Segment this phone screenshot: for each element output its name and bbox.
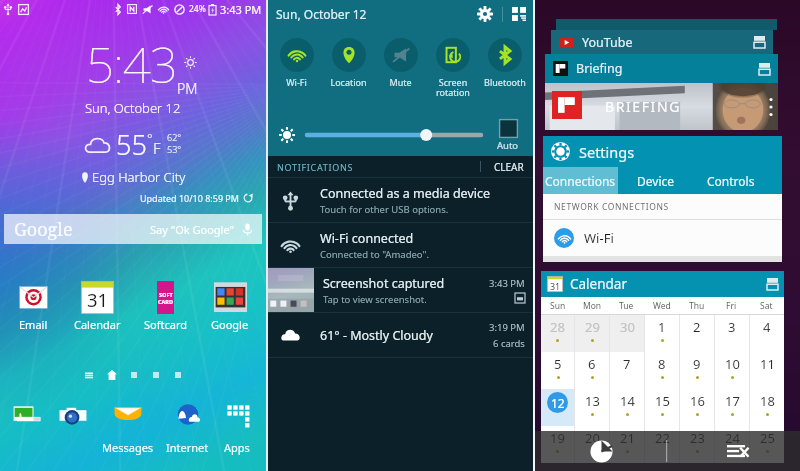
button[interactable]: Settings bbox=[543, 136, 782, 167]
button[interactable]: 9 bbox=[680, 352, 714, 389]
staticText: ° bbox=[147, 129, 153, 147]
button[interactable]: 21 bbox=[610, 426, 644, 463]
button[interactable]: Edit quick settings bbox=[512, 7, 526, 21]
button[interactable]: 5 bbox=[541, 352, 574, 389]
button[interactable]: 22 bbox=[645, 426, 679, 463]
staticText: 19 bbox=[550, 429, 565, 447]
button[interactable] bbox=[307, 126, 481, 144]
button[interactable]: 2 bbox=[680, 315, 714, 352]
button[interactable]: Google bbox=[205, 281, 255, 332]
button[interactable]: 31 bbox=[541, 271, 784, 297]
button[interactable]: Location bbox=[323, 38, 374, 88]
button[interactable]: Mute bbox=[375, 38, 426, 88]
staticText: PM bbox=[177, 79, 198, 98]
button[interactable]: 17 bbox=[715, 389, 749, 426]
staticText: Google bbox=[211, 317, 249, 332]
staticText: 14 bbox=[620, 392, 635, 410]
button[interactable]: SOFT bbox=[138, 281, 193, 332]
button[interactable]: 1 bbox=[645, 315, 679, 352]
button[interactable]: Wi-Fi bbox=[543, 220, 782, 256]
button[interactable]: Google bbox=[4, 214, 262, 244]
button[interactable] bbox=[85, 371, 93, 379]
button[interactable]: 24 bbox=[715, 426, 749, 463]
button[interactable]: Wi-Fi connected bbox=[268, 223, 533, 267]
staticText: 31 bbox=[87, 287, 109, 312]
button[interactable]: 13 bbox=[575, 389, 609, 426]
staticText: Device bbox=[637, 173, 675, 189]
button[interactable]: Messages bbox=[99, 403, 157, 455]
button[interactable]: Controls bbox=[693, 167, 768, 194]
staticText: 1 bbox=[658, 318, 666, 336]
staticText: Sun, October 12 bbox=[85, 99, 181, 117]
button[interactable]: 23 bbox=[680, 426, 714, 463]
button[interactable] bbox=[499, 119, 518, 138]
button[interactable] bbox=[10, 403, 48, 440]
staticText: 53° bbox=[167, 143, 182, 155]
staticText: 11 bbox=[760, 355, 775, 373]
other: More options bbox=[769, 96, 773, 118]
button[interactable]: YouTube bbox=[551, 30, 773, 54]
staticText: 9 bbox=[693, 355, 701, 373]
button[interactable]: Briefing bbox=[545, 54, 778, 83]
button[interactable]: Connections bbox=[543, 167, 618, 194]
button[interactable]: 4 bbox=[750, 315, 784, 352]
button[interactable]: CLEAR bbox=[494, 160, 524, 174]
button[interactable]: 14 bbox=[610, 389, 644, 426]
staticText: NETWORK CONNECTIONS bbox=[554, 201, 669, 213]
button[interactable]: 20 bbox=[575, 426, 609, 463]
button[interactable]: Recent apps bbox=[584, 434, 618, 468]
button[interactable]: 15 bbox=[645, 389, 679, 426]
button[interactable]: 25 bbox=[750, 426, 784, 463]
button[interactable]: Device bbox=[618, 167, 693, 194]
staticText: Auto bbox=[497, 139, 519, 152]
button[interactable]: Screenshot captured bbox=[268, 268, 533, 312]
staticText: 6 cards bbox=[493, 337, 525, 350]
staticText: Fri bbox=[726, 300, 737, 312]
button[interactable] bbox=[54, 403, 92, 440]
button[interactable]: Home bbox=[650, 434, 684, 468]
button[interactable]: 6 bbox=[575, 352, 609, 389]
button[interactable]: 30 bbox=[610, 315, 644, 352]
staticText: Softcard bbox=[144, 317, 187, 332]
button[interactable]: Connected as a media device bbox=[268, 178, 533, 222]
button[interactable]: Back bbox=[721, 434, 755, 468]
staticText: Bluetooth bbox=[484, 76, 526, 88]
button[interactable] bbox=[107, 370, 117, 380]
button[interactable]: Screen rotation bbox=[427, 38, 478, 98]
button[interactable]: 3 bbox=[715, 315, 749, 352]
staticText: 12 bbox=[551, 395, 565, 411]
button[interactable]: 19 bbox=[541, 426, 574, 463]
button[interactable]: 31 bbox=[68, 281, 127, 332]
staticText: 24% bbox=[189, 3, 206, 15]
button[interactable]: 28 bbox=[541, 315, 574, 352]
button[interactable]: 7 bbox=[610, 352, 644, 389]
button[interactable]: Apps bbox=[218, 403, 256, 455]
staticText: 22 bbox=[655, 429, 670, 447]
button[interactable]: Wi-Fi bbox=[271, 38, 322, 88]
button[interactable]: Email bbox=[11, 281, 56, 332]
other: Refresh bbox=[243, 193, 253, 203]
staticText: BRIEFING bbox=[605, 97, 681, 116]
button[interactable]: Bluetooth bbox=[479, 38, 530, 88]
button[interactable]: 10 bbox=[715, 352, 749, 389]
staticText: 8 bbox=[658, 355, 666, 373]
staticText: Calendar bbox=[74, 317, 121, 332]
staticText: Email bbox=[19, 317, 48, 332]
staticText: SOFT bbox=[159, 291, 173, 298]
button[interactable]: Settings bbox=[477, 6, 493, 22]
button[interactable]: 29 bbox=[575, 315, 609, 352]
staticText: Touch for other USB options. bbox=[320, 203, 449, 216]
button[interactable]: 16 bbox=[680, 389, 714, 426]
staticText: 55 bbox=[116, 126, 147, 163]
staticText: 29 bbox=[585, 318, 600, 336]
button[interactable]: 61° - Mostly Cloudy bbox=[268, 313, 533, 357]
button[interactable]: 12 bbox=[541, 389, 574, 426]
button[interactable]: 8 bbox=[645, 352, 679, 389]
button[interactable]: 11 bbox=[750, 352, 784, 389]
staticText: 24 bbox=[725, 429, 740, 447]
button[interactable]: Internet bbox=[163, 403, 212, 455]
button[interactable]: 18 bbox=[750, 389, 784, 426]
